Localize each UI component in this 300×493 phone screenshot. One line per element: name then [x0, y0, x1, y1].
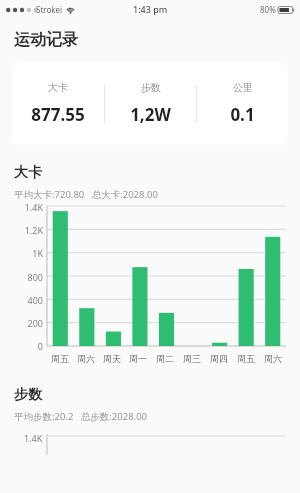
staticText: 周五 — [51, 353, 69, 364]
staticText: 200 — [27, 317, 43, 329]
staticText: 400 — [27, 294, 43, 306]
staticText: 周五 — [237, 353, 255, 364]
staticText: 1:43 pm — [133, 3, 168, 15]
staticText: 1.4K — [24, 201, 43, 213]
staticText: 周三 — [183, 353, 201, 364]
staticText: 大卡 — [14, 164, 42, 182]
staticText: 1K — [32, 247, 43, 259]
staticText: 大卡 — [48, 81, 68, 94]
staticText: 1,2W — [130, 103, 171, 126]
staticText: 0.1 — [230, 103, 255, 126]
staticText: 周天 — [103, 353, 121, 364]
staticText: 周六 — [264, 353, 282, 364]
staticText: 0 — [37, 340, 43, 352]
staticText: Strokei — [36, 4, 63, 15]
staticText: 1.2K — [24, 224, 43, 236]
staticText: 周二 — [156, 353, 174, 364]
button[interactable]: 大卡 — [12, 62, 288, 145]
staticText: 周一 — [129, 353, 147, 364]
staticText: 周四 — [210, 353, 228, 364]
staticText: 步数 — [141, 81, 161, 94]
staticText: 平均步数:20.2 总步数:2028.00 — [14, 410, 148, 423]
staticText: 877.55 — [31, 103, 85, 126]
staticText: 周六 — [77, 353, 95, 364]
staticText: 运动记录 — [14, 30, 78, 50]
staticText: 800 — [27, 271, 43, 283]
staticText: 步数 — [14, 386, 42, 404]
staticText: 公里 — [233, 81, 253, 94]
staticText: 1.4K — [24, 432, 43, 444]
staticText: 平均大卡:720.80 总大卡:2028.00 — [14, 188, 158, 201]
staticText: 80% — [260, 4, 276, 15]
